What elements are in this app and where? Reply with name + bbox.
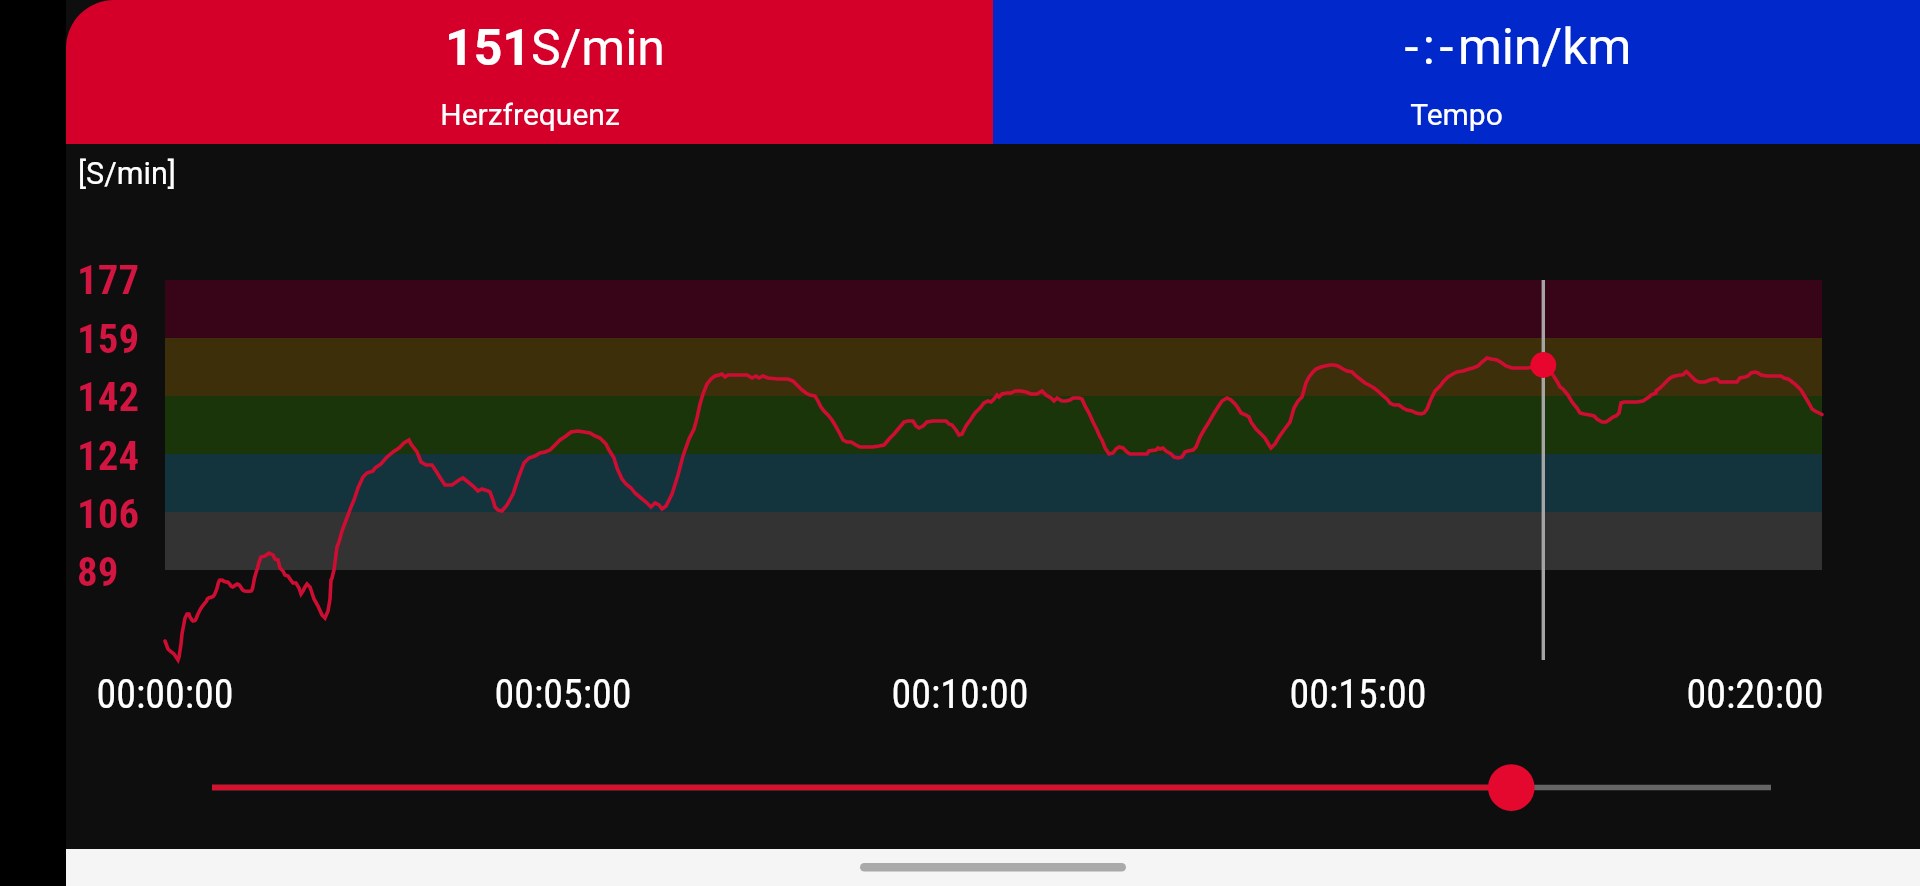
staticText: 106 [77, 490, 140, 538]
button[interactable]: Zeitposition [190, 762, 1790, 814]
staticText: min/km [1458, 18, 1632, 77]
button[interactable]: Tempo [993, 0, 1920, 144]
staticText: 00:00:00 [96, 671, 234, 718]
staticText: 00:15:00 [1289, 671, 1427, 718]
staticText: 177 [77, 256, 140, 304]
button[interactable]: Herzfrequenz-Diagramm [165, 280, 1822, 660]
staticText: 00:05:00 [494, 671, 632, 718]
staticText: Tempo [1410, 97, 1503, 132]
button[interactable]: Herzfrequenz 151 S/min [66, 0, 993, 144]
staticText: -:- [1404, 18, 1458, 77]
staticText: 00:10:00 [891, 671, 1029, 718]
staticText: S/min [531, 19, 665, 78]
staticText: 159 [77, 315, 140, 363]
staticText: 151 [444, 19, 531, 78]
staticText: 00:20:00 [1686, 671, 1824, 718]
staticText: 124 [77, 432, 140, 480]
staticText: [S/min] [78, 156, 176, 192]
staticText: 142 [77, 373, 140, 421]
staticText: Herzfrequenz [440, 97, 620, 132]
staticText: 89 [77, 548, 119, 596]
